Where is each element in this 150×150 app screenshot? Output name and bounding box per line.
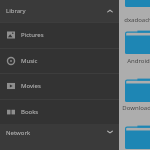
button[interactable] (122, 78, 150, 102)
staticText: Network (6, 129, 31, 137)
button[interactable] (122, 125, 150, 149)
button[interactable]: Library (0, 0, 119, 22)
staticText: Downloads (122, 104, 150, 112)
button[interactable] (122, 30, 150, 54)
staticText: Music (21, 57, 38, 65)
button[interactable] (122, 0, 150, 7)
staticText: Pictures (21, 31, 44, 39)
staticText: Android (127, 57, 150, 65)
button[interactable]: Movies (0, 73, 119, 99)
button[interactable]: Pictures (0, 22, 119, 48)
staticText: Movies (21, 82, 41, 90)
button[interactable]: Network (0, 124, 119, 150)
other: Expand (107, 130, 113, 134)
staticText: dxadoach (124, 16, 150, 24)
button[interactable]: Music (0, 48, 119, 74)
staticText: Library (6, 7, 26, 15)
staticText: Books (21, 108, 39, 116)
button[interactable]: Books (0, 99, 119, 125)
other: Collapse (107, 9, 113, 13)
